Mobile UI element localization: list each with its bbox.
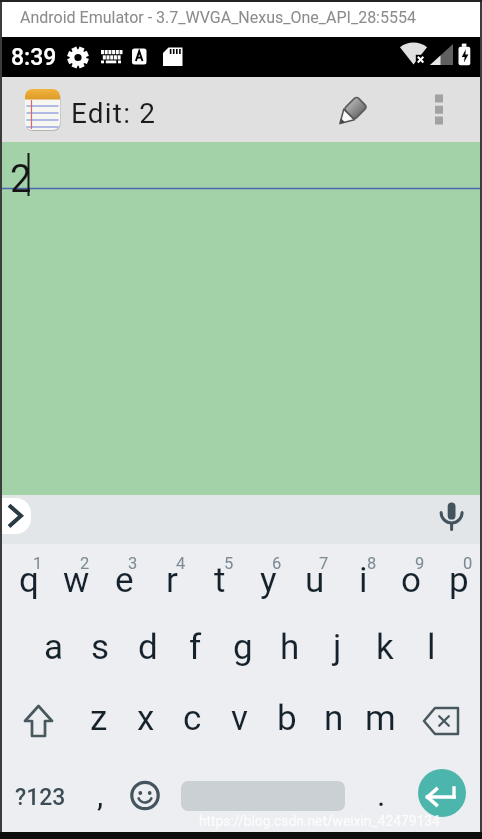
staticText: s <box>91 627 110 668</box>
button[interactable]: n <box>310 683 357 753</box>
staticText: q <box>19 560 39 601</box>
staticText: j <box>333 627 342 668</box>
button[interactable] <box>2 686 75 756</box>
staticText: e <box>115 560 134 601</box>
button[interactable]: h <box>266 612 313 682</box>
button[interactable] <box>330 85 378 133</box>
button[interactable]: y <box>244 545 292 615</box>
staticText: 8:39 <box>11 44 57 71</box>
staticText: . <box>377 776 386 814</box>
button[interactable]: l <box>408 612 455 682</box>
staticText: b <box>277 698 297 739</box>
staticText: c <box>183 698 202 739</box>
staticText: 1 <box>33 554 43 573</box>
staticText: a <box>44 627 64 668</box>
button[interactable]: z <box>75 683 122 753</box>
button[interactable]: a <box>30 612 77 682</box>
staticText: 7 <box>319 554 329 573</box>
button[interactable]: j <box>314 612 361 682</box>
staticText: 2 <box>10 157 32 202</box>
staticText: 6 <box>272 554 282 573</box>
button[interactable]: k <box>361 612 408 682</box>
staticText: 3 <box>128 554 138 573</box>
staticText: ?123 <box>15 784 66 811</box>
button[interactable] <box>404 686 480 756</box>
button[interactable]: b <box>263 683 310 753</box>
button[interactable]: , <box>78 758 122 828</box>
button[interactable]: t <box>196 545 244 615</box>
staticText: h <box>280 627 300 668</box>
staticText: r <box>166 560 178 601</box>
button[interactable] <box>418 769 466 817</box>
staticText: , <box>97 776 104 814</box>
button[interactable] <box>0 498 31 534</box>
button[interactable]: i <box>339 545 387 615</box>
staticText: f <box>189 627 202 668</box>
staticText: 5 <box>224 554 234 573</box>
button[interactable]: o <box>387 545 435 615</box>
button[interactable]: s <box>77 612 124 682</box>
button[interactable]: g <box>219 612 266 682</box>
staticText: 4 <box>176 554 186 573</box>
staticText: 2 <box>80 554 90 573</box>
button[interactable]: r <box>148 545 196 615</box>
staticText: 9 <box>415 554 425 573</box>
button[interactable] <box>425 85 453 133</box>
staticText: l <box>427 627 436 668</box>
staticText: z <box>90 698 108 739</box>
button[interactable]: w <box>52 545 100 615</box>
button[interactable]: . <box>358 758 404 828</box>
staticText: 8 <box>367 554 377 573</box>
staticText: https://blog.csdn.net/weixin_42479134 <box>199 813 440 829</box>
staticText: k <box>376 627 394 668</box>
staticText: o <box>401 560 421 601</box>
staticText: v <box>231 698 248 739</box>
button[interactable]: ?123 <box>2 758 78 828</box>
staticText: u <box>305 560 325 601</box>
button[interactable]: p <box>435 545 482 615</box>
staticText: m <box>365 698 396 739</box>
button[interactable]: m <box>357 683 404 753</box>
staticText: n <box>324 698 344 739</box>
staticText: g <box>233 627 253 668</box>
staticText: p <box>449 560 469 601</box>
button[interactable]: f <box>172 612 219 682</box>
staticText: i <box>359 560 368 601</box>
button[interactable]: e <box>100 545 148 615</box>
staticText: d <box>138 627 158 668</box>
staticText: w <box>63 560 90 601</box>
button[interactable]: d <box>124 612 171 682</box>
staticText: Android Emulator - 3.7_WVGA_Nexus_One_AP… <box>20 8 416 27</box>
staticText: x <box>137 698 155 739</box>
button[interactable] <box>428 492 474 538</box>
button[interactable]: x <box>122 683 169 753</box>
staticText: Edit: 2 <box>71 97 157 130</box>
staticText: t <box>214 560 226 601</box>
button[interactable]: u <box>291 545 339 615</box>
button[interactable]: v <box>216 683 263 753</box>
button[interactable]: c <box>169 683 216 753</box>
button[interactable] <box>122 758 168 828</box>
button[interactable] <box>0 142 482 495</box>
staticText: y <box>260 560 277 601</box>
staticText: 0 <box>463 554 473 573</box>
button[interactable]: q <box>5 545 53 615</box>
